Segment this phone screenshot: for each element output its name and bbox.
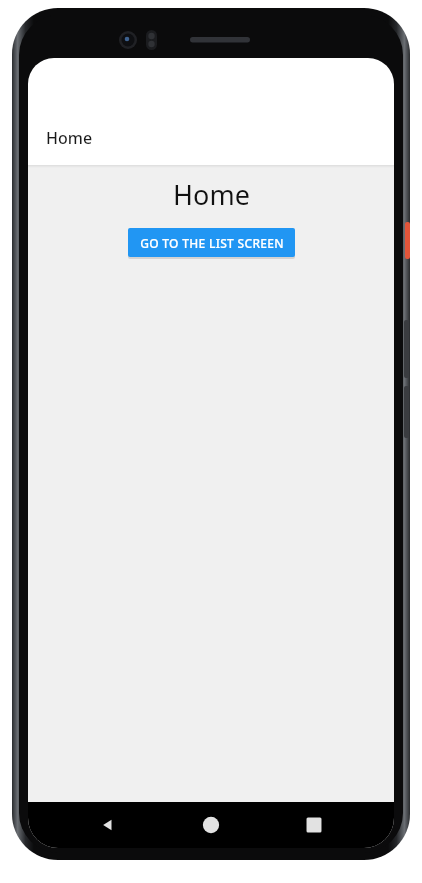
button[interactable]: Home <box>28 110 394 165</box>
button[interactable]: Back <box>85 802 131 848</box>
staticText: Home <box>46 127 93 149</box>
button[interactable]: Recents <box>291 802 337 848</box>
button[interactable]: GO TO THE LIST SCREEN <box>128 228 295 257</box>
button[interactable]: Home <box>188 802 234 848</box>
staticText: GO TO THE LIST SCREEN <box>140 235 284 251</box>
staticText: Home <box>173 176 250 213</box>
